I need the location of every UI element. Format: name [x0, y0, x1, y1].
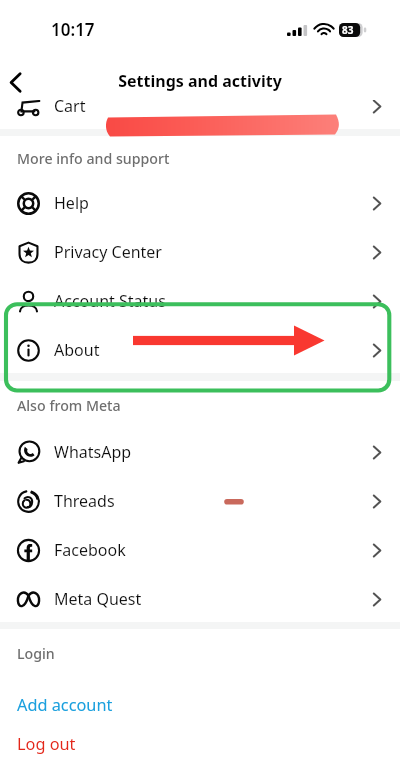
button[interactable]: Account Status — [0, 275, 400, 324]
staticText: Settings and activity — [118, 70, 282, 92]
staticText: Meta Quest — [54, 588, 142, 610]
staticText: Cart — [54, 100, 86, 117]
button[interactable]: Meta Quest — [0, 573, 400, 622]
button[interactable]: WhatsApp — [0, 426, 400, 475]
staticText: More info and support — [17, 149, 170, 168]
staticText: Log out — [17, 733, 76, 755]
button[interactable]: Add account — [17, 680, 400, 730]
button[interactable]: Help — [0, 177, 400, 226]
button[interactable]: Facebook — [0, 524, 400, 573]
button[interactable]: Cart — [0, 100, 400, 129]
staticText: WhatsApp — [54, 441, 132, 463]
staticText: 83 — [342, 23, 354, 37]
staticText: Privacy Center — [54, 241, 162, 263]
button[interactable]: Back — [0, 63, 34, 101]
staticText: Help — [54, 192, 89, 214]
staticText: Facebook — [54, 539, 126, 561]
staticText: Add account — [17, 694, 113, 716]
staticText: Threads — [54, 490, 115, 512]
staticText: 10:17 — [51, 18, 95, 41]
button[interactable]: Threads — [0, 475, 400, 524]
staticText: Also from Meta — [17, 396, 121, 415]
staticText: Account Status — [54, 290, 166, 312]
staticText: About — [54, 339, 100, 361]
button[interactable]: About — [0, 324, 400, 373]
button[interactable]: Privacy Center — [0, 226, 400, 275]
button[interactable]: Log out — [17, 730, 400, 757]
staticText: Login — [17, 644, 55, 663]
